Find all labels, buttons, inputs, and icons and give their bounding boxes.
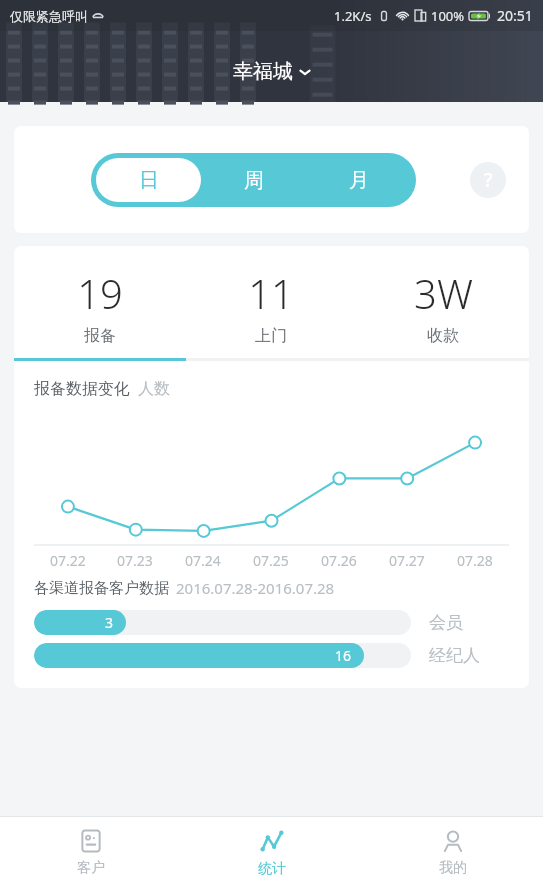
staticText: 20:51 bbox=[497, 6, 533, 25]
button[interactable]: 日 bbox=[96, 158, 201, 202]
staticText: 收款 bbox=[427, 326, 459, 346]
staticText: 上门 bbox=[255, 326, 287, 346]
staticText: 会员 bbox=[429, 612, 463, 633]
button[interactable]: 16 bbox=[34, 643, 509, 668]
staticText: 07.25 bbox=[253, 551, 289, 570]
staticText: 07.22 bbox=[50, 551, 86, 570]
button[interactable]: 11 bbox=[185, 246, 357, 358]
staticText: 各渠道报备客户数据 bbox=[34, 579, 169, 598]
staticText: 3W bbox=[414, 266, 473, 320]
staticText: 日 bbox=[139, 168, 159, 193]
button[interactable]: 周 bbox=[201, 158, 306, 202]
staticText: 07.26 bbox=[321, 551, 357, 570]
button[interactable]: 幸福城 bbox=[225, 57, 319, 86]
staticText: 16 bbox=[335, 646, 352, 665]
button[interactable]: 19 bbox=[14, 246, 185, 358]
staticText: 报备 bbox=[84, 326, 116, 346]
button[interactable]: 3W bbox=[357, 246, 529, 358]
button[interactable]: 客户 bbox=[0, 817, 181, 889]
staticText: ? bbox=[484, 167, 493, 193]
staticText: 07.24 bbox=[185, 551, 221, 570]
staticText: 幸福城 bbox=[233, 59, 293, 84]
staticText: 报备数据变化 bbox=[34, 379, 130, 399]
staticText: 2016.07.28-2016.07.28 bbox=[176, 578, 335, 598]
staticText: 客户 bbox=[77, 859, 105, 877]
staticText: 07.23 bbox=[117, 551, 153, 570]
staticText: 我的 bbox=[439, 859, 467, 877]
staticText: 1.2K/s bbox=[334, 7, 372, 25]
staticText: 月 bbox=[349, 168, 369, 193]
staticText: 人数 bbox=[138, 379, 170, 399]
button[interactable]: 月 bbox=[306, 158, 411, 202]
staticText: 周 bbox=[244, 168, 264, 193]
button[interactable]: 统计 bbox=[181, 817, 362, 889]
staticText: 07.28 bbox=[457, 551, 493, 570]
staticText: 3 bbox=[105, 613, 114, 632]
button[interactable]: Help bbox=[470, 162, 506, 198]
button[interactable]: 3 bbox=[34, 610, 509, 635]
staticText: 经纪人 bbox=[429, 645, 480, 666]
staticText: 07.27 bbox=[389, 551, 425, 570]
staticText: 11 bbox=[248, 266, 294, 320]
staticText: 统计 bbox=[258, 860, 286, 878]
staticText: 19 bbox=[77, 266, 123, 320]
staticText: 100% bbox=[431, 7, 465, 25]
button[interactable]: 我的 bbox=[362, 817, 543, 889]
staticText: 仅限紧急呼叫 bbox=[10, 8, 88, 24]
